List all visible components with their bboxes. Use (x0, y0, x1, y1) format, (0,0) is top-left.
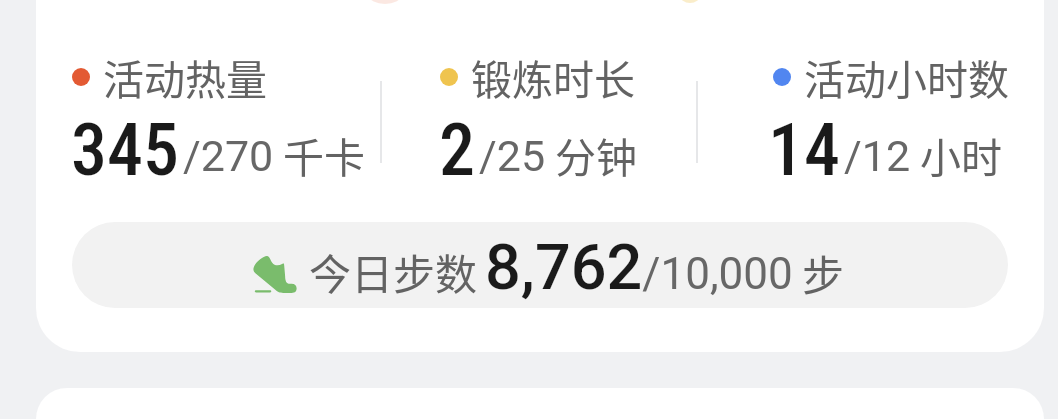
button[interactable] (392, 40, 692, 180)
staticText: 8,762/10,000 (485, 231, 793, 305)
other: Steps (252, 253, 298, 295)
staticText: 锻炼时长 (471, 47, 635, 106)
staticText: 活动小时数 (804, 47, 1009, 106)
staticText: 活动热量 (103, 47, 267, 106)
staticText: 小时 (920, 125, 1002, 184)
button[interactable]: Steps (72, 222, 1008, 308)
button[interactable] (62, 40, 372, 180)
staticText: 步 (802, 242, 845, 303)
staticText: 2 (439, 108, 475, 192)
staticText: 345 (71, 108, 179, 192)
staticText: 14 (768, 108, 840, 192)
staticText: 千卡 (283, 125, 365, 184)
staticText: /270 (183, 131, 274, 181)
button[interactable]: 活动热量 (36, 0, 1044, 352)
staticText: 今日步数 (309, 241, 478, 302)
staticText: /25 (479, 131, 546, 181)
button[interactable] (708, 40, 1018, 180)
staticText: /12 (844, 131, 911, 181)
staticText: 分钟 (555, 125, 637, 184)
